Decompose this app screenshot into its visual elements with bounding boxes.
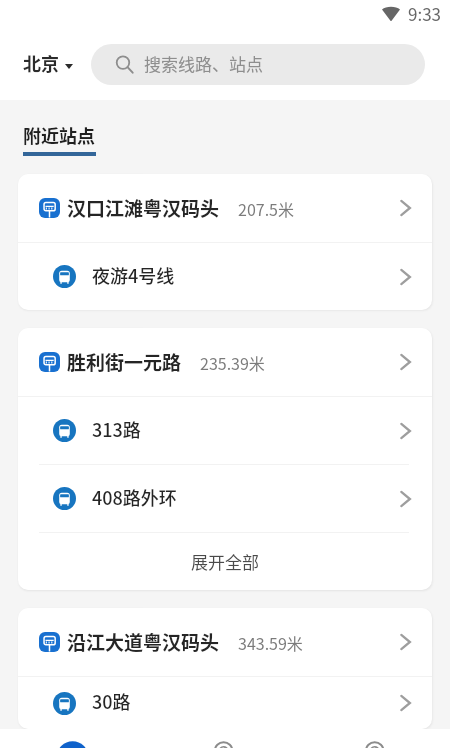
staticText: 胜利街一元路 bbox=[67, 348, 182, 376]
other: 查看详情 bbox=[400, 200, 411, 216]
button[interactable]: 408路外环 bbox=[18, 465, 432, 532]
staticText: 汉口江滩粤汉码头 bbox=[67, 194, 220, 222]
staticText: 9:33 bbox=[408, 1, 442, 26]
button[interactable]: 地图 bbox=[150, 729, 300, 748]
other: 查看详情 bbox=[400, 423, 411, 439]
staticText: 207.5米 bbox=[238, 197, 294, 220]
staticText: 北京 bbox=[23, 50, 59, 76]
staticText: 附近站点 bbox=[23, 122, 95, 148]
staticText: 展开全部 bbox=[191, 549, 259, 574]
button[interactable]: 北京 bbox=[23, 44, 73, 85]
button[interactable]: 搜索线路、站点 bbox=[91, 44, 425, 85]
other: 查看详情 bbox=[400, 354, 411, 370]
staticText: 408路外环 bbox=[92, 484, 177, 510]
button[interactable]: 胜利街一元路 bbox=[18, 328, 432, 396]
button[interactable]: 313路 bbox=[18, 397, 432, 464]
staticText: 搜索线路、站点 bbox=[144, 51, 263, 76]
staticText: 235.39米 bbox=[200, 351, 265, 374]
staticText: 313路 bbox=[92, 416, 141, 442]
button[interactable]: 汉口江滩粤汉码头 bbox=[18, 174, 432, 242]
staticText: 30路 bbox=[92, 688, 131, 714]
staticText: 夜游4号线 bbox=[92, 262, 175, 288]
button[interactable]: 夜游4号线 bbox=[18, 243, 432, 310]
other: 查看详情 bbox=[400, 269, 411, 285]
button[interactable]: 30路 bbox=[18, 677, 432, 729]
staticText: 343.59米 bbox=[238, 631, 303, 654]
other: 查看详情 bbox=[400, 491, 411, 507]
other: 查看详情 bbox=[400, 695, 411, 711]
other: 查看详情 bbox=[400, 634, 411, 650]
staticText: 沿江大道粤汉码头 bbox=[67, 628, 220, 656]
button[interactable]: 沿江大道粤汉码头 bbox=[18, 608, 432, 676]
button[interactable]: 展开全部 bbox=[18, 533, 432, 590]
button[interactable]: 我的 bbox=[300, 729, 450, 748]
button[interactable]: 线路 bbox=[0, 729, 150, 748]
